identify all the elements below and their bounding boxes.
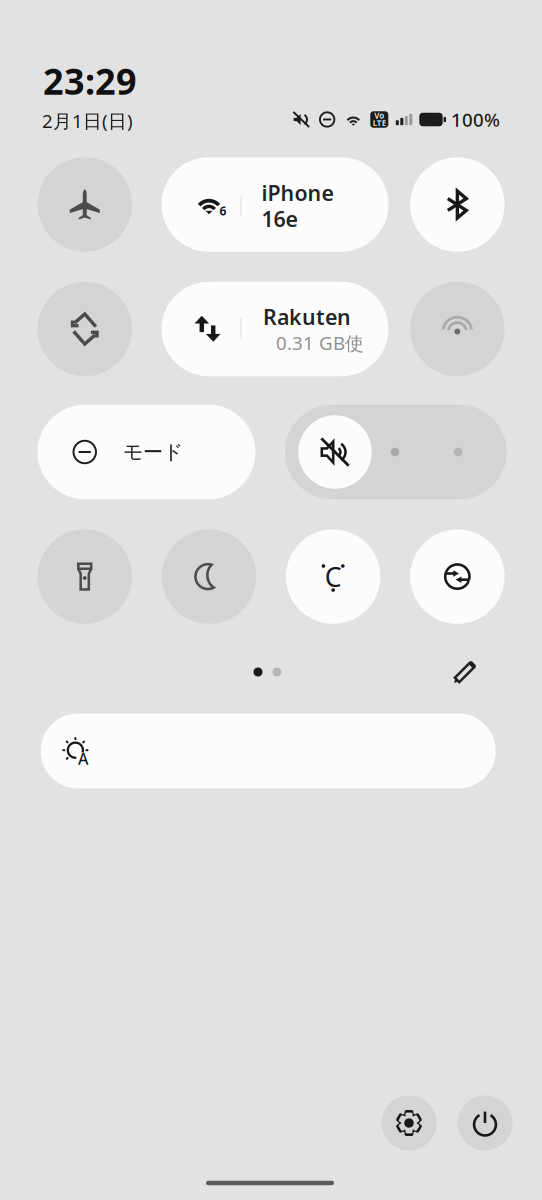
staticText: Vo — [374, 110, 384, 121]
staticText: C — [325, 559, 342, 594]
staticText: 0.31 GB使 — [276, 330, 364, 355]
button[interactable]: 設定 — [381, 1095, 436, 1150]
button[interactable]: モード — [37, 405, 255, 499]
staticText: LTE — [373, 118, 386, 128]
button[interactable]: データセーバー — [410, 529, 505, 624]
button[interactable]: 編集 — [443, 650, 487, 694]
staticText: Rakuten — [263, 303, 351, 331]
button[interactable]: 機内モード — [37, 157, 132, 252]
button[interactable]: 懐中電灯 — [37, 529, 132, 624]
staticText: 23:29 — [43, 57, 137, 105]
staticText: iPhone — [261, 179, 333, 207]
button[interactable]: Rakuten — [161, 282, 388, 376]
staticText: 2月1日(日) — [42, 108, 133, 133]
button[interactable]: テザリング — [410, 282, 505, 376]
button[interactable]: 6 — [161, 157, 388, 252]
button[interactable]: おやすみモード — [162, 529, 256, 624]
staticText: 16e — [261, 205, 297, 233]
button[interactable]: 自動回転 — [37, 282, 132, 376]
button[interactable]: Bixby — [286, 529, 380, 624]
staticText: A — [78, 748, 88, 769]
button[interactable]: Bluetooth — [410, 157, 505, 252]
button[interactable]: 画面の明るさ — [41, 713, 496, 788]
button[interactable]: 電源 — [457, 1095, 512, 1150]
staticText: 6 — [219, 203, 226, 219]
button[interactable]: 音量 — [285, 405, 507, 499]
staticText: モード — [123, 440, 183, 464]
staticText: 100% — [451, 107, 500, 132]
